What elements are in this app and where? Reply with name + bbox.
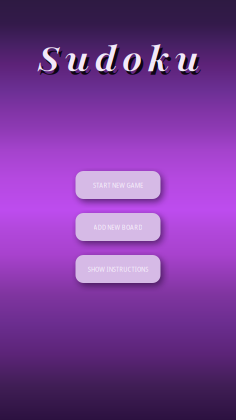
staticText: START NEW GAME (93, 180, 143, 190)
button[interactable]: START NEW GAME (75, 171, 160, 199)
button[interactable]: SHOW INSTRUCTIONS (75, 255, 160, 283)
staticText: SHOW INSTRUCTIONS (88, 264, 148, 274)
button[interactable]: ADD NEW BOARD (75, 213, 160, 241)
staticText: ADD NEW BOARD (94, 222, 142, 232)
staticText: Sudoku (40, 37, 201, 88)
staticText: Sudoku (37, 33, 199, 85)
